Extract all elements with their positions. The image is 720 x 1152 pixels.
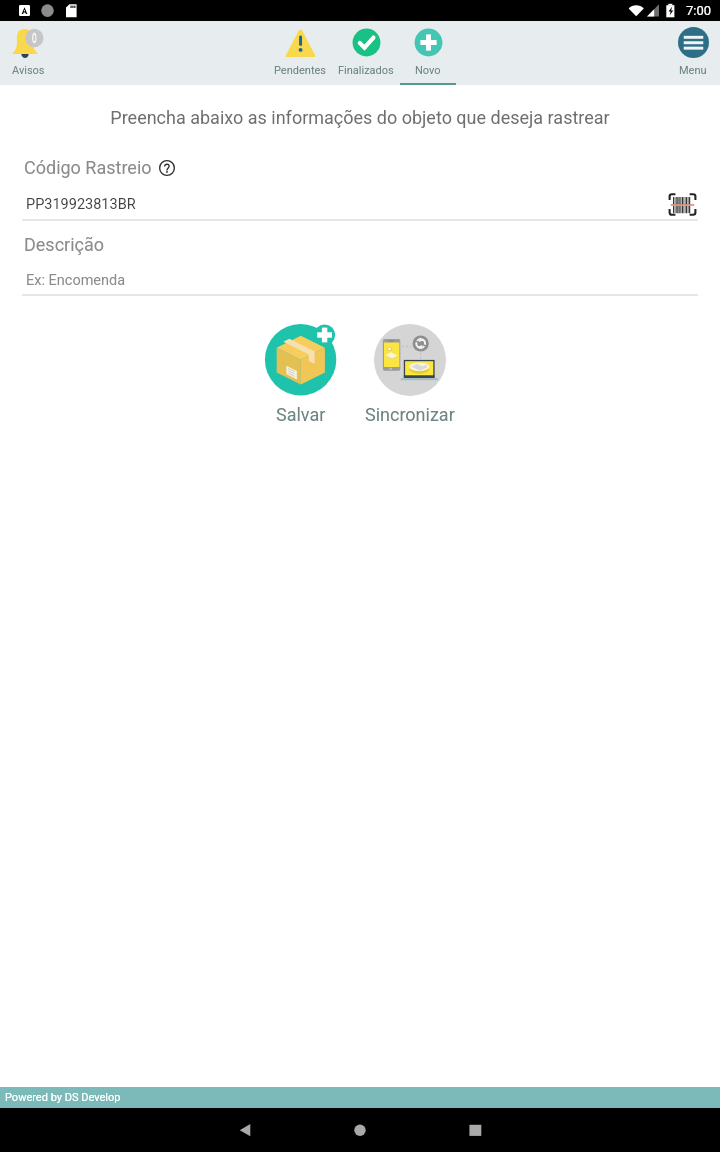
button[interactable]: Pendentes	[262, 21, 338, 85]
button[interactable]: Menu	[655, 21, 720, 85]
button[interactable]: Início	[325, 1108, 395, 1152]
button[interactable]: Aplicativos recentes	[440, 1108, 510, 1152]
button[interactable]: Voltar	[225, 1108, 295, 1152]
other: Menu	[678, 27, 709, 58]
staticText: Finalizados	[338, 64, 394, 77]
staticText: Novo	[415, 64, 441, 77]
staticText: Código Rastreio	[24, 157, 152, 178]
staticText: Preencha abaixo as informações do objeto…	[0, 107, 720, 128]
button[interactable]: Salvar	[247, 324, 355, 429]
button[interactable]: Ajuda	[152, 153, 182, 183]
button[interactable]: Avisos	[0, 21, 66, 85]
button[interactable]: Escanear código de barras	[664, 186, 700, 222]
staticText: 7:00	[686, 3, 712, 18]
staticText: Pendentes	[274, 64, 326, 77]
button[interactable]: Finalizados	[328, 21, 404, 85]
staticText: Powered by DS Develop	[5, 1091, 121, 1104]
staticText: PP319923813BR	[26, 196, 136, 213]
staticText: Avisos	[12, 64, 45, 77]
staticText: Ex: Encomenda	[26, 272, 126, 289]
staticText: Sincronizar	[365, 404, 455, 425]
button[interactable]: Sincronizar	[356, 324, 464, 429]
staticText: Descrição	[24, 234, 105, 255]
staticText: Menu	[679, 64, 707, 77]
staticText: Salvar	[276, 404, 326, 425]
button[interactable]: Novo	[390, 21, 466, 85]
